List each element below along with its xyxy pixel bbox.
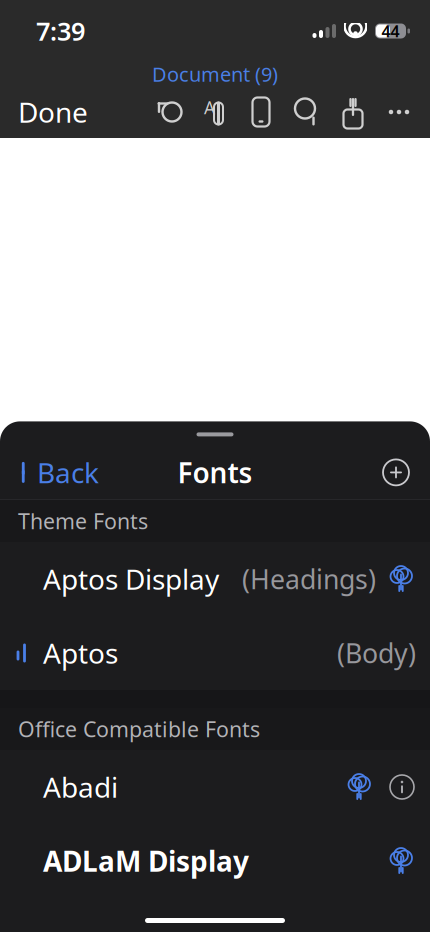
staticText: 44 [381, 20, 399, 42]
button[interactable]: Search [284, 90, 330, 134]
staticText: Document (9) [152, 61, 278, 87]
button[interactable]: More [376, 90, 422, 134]
staticText: ADLaM Display [43, 842, 249, 880]
button[interactable]: Draw [192, 90, 238, 134]
button[interactable]: ADLaM Display [0, 824, 430, 898]
button[interactable]: Share [330, 90, 376, 134]
button[interactable]: Abadi [0, 750, 430, 824]
button[interactable]: Document (9) [0, 62, 430, 86]
staticText: Office Compatible Fonts [18, 715, 260, 743]
button[interactable]: Undo [146, 90, 192, 134]
button[interactable]: Close [370, 450, 422, 494]
staticText: Fonts [177, 454, 252, 491]
staticText: A [204, 96, 215, 119]
staticText: (Headings) [242, 561, 376, 597]
button[interactable]: Mobile View [238, 90, 284, 134]
staticText: 7:39 [36, 14, 85, 48]
button[interactable]: Back [6, 450, 111, 494]
staticText: (Body) [337, 635, 416, 671]
button[interactable]: Done [6, 90, 100, 134]
button[interactable]: Aptos [0, 616, 430, 690]
button[interactable]: Aptos Display [0, 542, 430, 616]
staticText: Done [18, 93, 88, 131]
staticText: Aptos [43, 634, 118, 672]
staticText: Abadi [43, 768, 118, 806]
staticText: Back [37, 454, 99, 491]
staticText: Aptos Display [43, 560, 219, 598]
staticText: Theme Fonts [18, 507, 148, 535]
